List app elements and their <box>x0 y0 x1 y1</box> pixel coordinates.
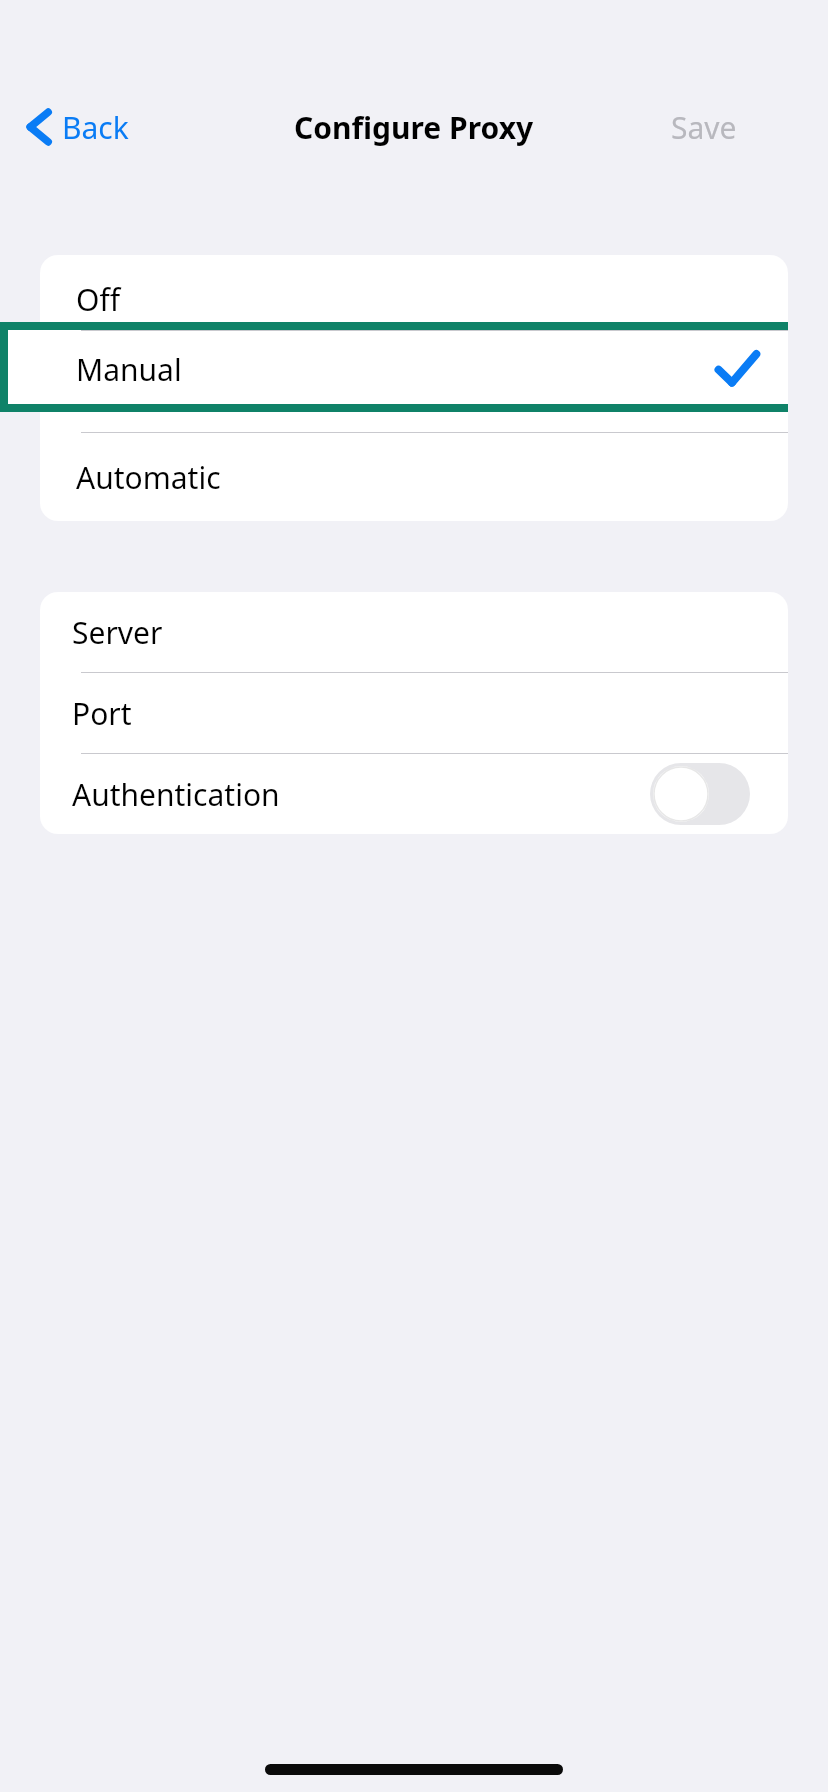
staticText: Configure Proxy <box>294 107 534 148</box>
staticText: Off <box>76 279 121 320</box>
button[interactable]: Server <box>40 592 788 672</box>
staticText: Manual <box>76 368 182 409</box>
staticText: Manual <box>76 349 182 390</box>
button[interactable]: Automatic <box>40 433 788 521</box>
button[interactable]: Port <box>40 673 788 753</box>
staticText: Authentication <box>72 774 280 815</box>
staticText: Automatic <box>76 457 221 498</box>
staticText: Port <box>72 693 132 734</box>
button[interactable]: Manual <box>40 344 788 432</box>
button[interactable]: Authentication <box>40 754 788 834</box>
button[interactable]: Save <box>600 98 808 156</box>
button[interactable]: Manual <box>40 330 788 404</box>
button[interactable]: Back <box>20 98 137 156</box>
button[interactable]: Authentication toggle <box>650 763 750 825</box>
staticText: Back <box>62 107 129 148</box>
staticText: Save <box>671 107 737 148</box>
staticText: Server <box>72 612 163 653</box>
button[interactable]: Off <box>40 255 788 343</box>
